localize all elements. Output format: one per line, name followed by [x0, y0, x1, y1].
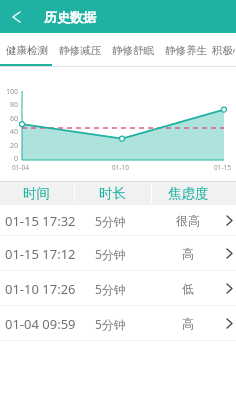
staticText: 健康检测 — [6, 44, 48, 57]
staticText: 60 — [10, 114, 19, 124]
staticText: 5分钟 — [95, 246, 126, 262]
staticText: 静修减压 — [59, 44, 101, 57]
staticText: 静修舒眠 — [112, 44, 154, 57]
staticText: 时长 — [99, 185, 126, 202]
staticText: 01-10 — [112, 163, 129, 172]
staticText: 5分钟 — [95, 213, 126, 229]
staticText: 静修养生 — [165, 44, 207, 57]
staticText: 01-15 — [214, 163, 231, 172]
button[interactable]: 静修减压 — [53, 33, 106, 67]
staticText: 5分钟 — [95, 281, 126, 297]
button[interactable]: 01-15 17:32 — [0, 205, 236, 236]
button[interactable] — [0, 0, 32, 33]
staticText: 很高 — [176, 213, 200, 228]
staticText: 01-04 09:59 — [5, 315, 76, 333]
staticText: 01-04 — [12, 163, 29, 172]
button[interactable]: 积极心理 — [212, 33, 236, 67]
staticText: 时间 — [23, 185, 50, 202]
staticText: 80 — [10, 100, 19, 110]
staticText: 01-15 17:12 — [5, 245, 76, 263]
staticText: 高 — [182, 316, 194, 331]
staticText: 0 — [14, 154, 19, 164]
staticText: 焦虑度 — [168, 185, 209, 202]
button[interactable]: 静修舒眠 — [106, 33, 159, 67]
button[interactable]: 01-10 17:26 — [0, 271, 236, 306]
staticText: 20 — [10, 141, 19, 151]
button[interactable]: 健康检测 — [0, 33, 53, 67]
staticText: 历史数据 — [44, 9, 96, 25]
staticText: 5分钟 — [95, 316, 126, 332]
staticText: 100 — [6, 87, 19, 97]
staticText: 01-10 17:26 — [5, 280, 76, 298]
staticText: 低 — [182, 281, 194, 296]
staticText: 40 — [10, 127, 19, 137]
staticText: 积极心理 — [212, 44, 236, 57]
button[interactable]: 静修养生 — [159, 33, 212, 67]
staticText: 高 — [182, 246, 194, 261]
staticText: 01-15 17:32 — [5, 212, 76, 230]
button[interactable]: 01-15 17:12 — [0, 236, 236, 271]
button[interactable]: 01-04 09:59 — [0, 306, 236, 341]
